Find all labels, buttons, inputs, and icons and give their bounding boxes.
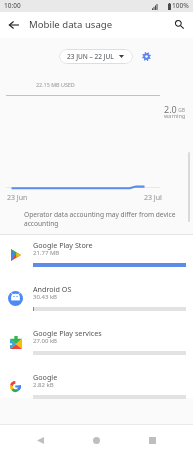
button[interactable]: Recents [139, 427, 165, 452]
button[interactable]: Settings [139, 49, 153, 63]
staticText: GB [177, 107, 185, 114]
staticText: Google Play Store [33, 240, 93, 250]
staticText: Operator data accounting may differ from… [24, 210, 179, 228]
button[interactable]: Back [4, 15, 23, 34]
staticText: 23 Jun [7, 193, 28, 203]
staticText: Android OS [33, 284, 72, 294]
staticText: 30.43 kB [33, 293, 58, 301]
staticText: Mobile data usage [29, 18, 113, 31]
staticText: 2.82 kB [33, 381, 54, 389]
staticText: 100% [172, 1, 189, 10]
staticText: Google [33, 372, 58, 382]
button[interactable]: Search [170, 15, 189, 34]
button[interactable]: Home [83, 427, 109, 452]
button[interactable]: Google Play services [0, 326, 193, 370]
button[interactable]: Google Play Store [0, 238, 193, 282]
staticText: 22.15 MB USED [36, 81, 75, 88]
button[interactable]: 23 JUN – 22 JUL [59, 49, 133, 64]
staticText: 21.77 MB [33, 249, 60, 257]
button[interactable]: Back [27, 427, 53, 452]
staticText: 2.0 [164, 103, 177, 115]
staticText: Google Play services [33, 328, 102, 338]
button[interactable]: Google [0, 370, 193, 414]
staticText: 27.00 kB [33, 337, 58, 345]
staticText: 10:00 [4, 1, 21, 10]
button[interactable]: Android OS [0, 282, 193, 326]
staticText: warning [164, 112, 186, 119]
staticText: 23 JUN – 22 JUL [67, 52, 114, 61]
staticText: 23 Jul [144, 193, 162, 203]
